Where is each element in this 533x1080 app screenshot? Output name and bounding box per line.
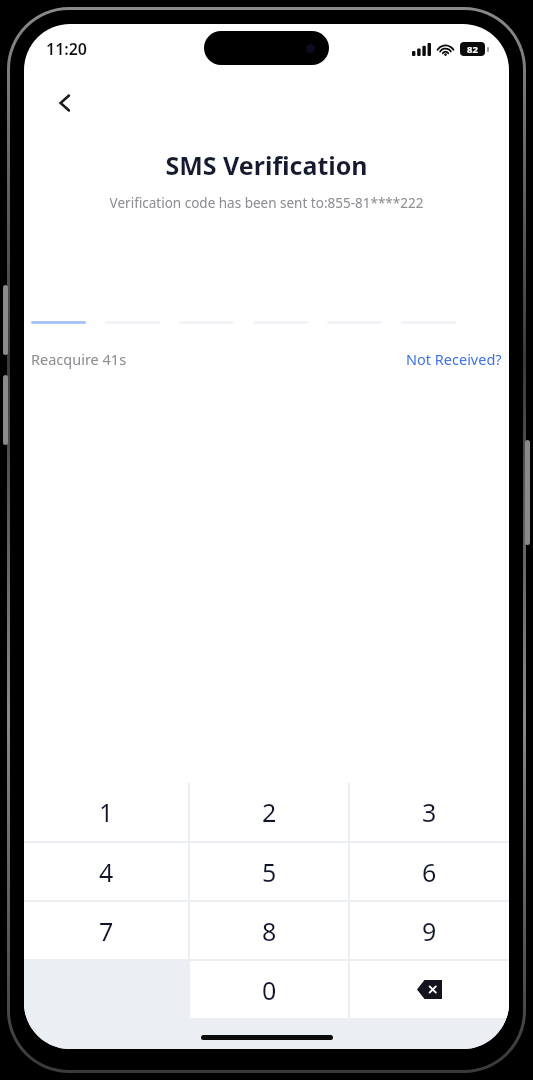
staticText: 2 [262,795,277,829]
button[interactable]: 3 [350,783,509,841]
staticText: 4 [99,855,114,889]
button[interactable] [179,300,234,324]
staticText: 0 [262,973,277,1007]
staticText: Verification code has been sent to:855-8… [32,194,501,212]
button[interactable] [253,300,308,324]
button[interactable]: 0 [190,961,348,1018]
button[interactable]: 5 [190,843,348,900]
staticText: 6 [422,855,437,889]
button[interactable] [401,300,456,324]
button[interactable]: 2 [190,783,348,841]
staticText: 1 [99,795,114,829]
staticText: Reacquire 41s [31,349,127,369]
button[interactable]: Not Received? [406,349,502,369]
staticText: 7 [99,914,114,948]
button[interactable]: Back [42,80,88,126]
button[interactable] [327,300,382,324]
button[interactable]: 1 [24,783,188,841]
button[interactable] [31,300,86,324]
staticText: SMS Verification [24,148,509,182]
staticText: 5 [262,855,277,889]
button[interactable] [105,300,160,324]
staticText: 3 [422,795,437,829]
staticText: 82 [467,43,478,56]
staticText: 9 [422,914,437,948]
staticText: 11:20 [46,38,88,60]
button[interactable]: Backspace [350,961,509,1018]
button[interactable]: 9 [350,902,509,959]
button[interactable]: 6 [350,843,509,900]
button[interactable]: 7 [24,902,188,959]
button[interactable]: 4 [24,843,188,900]
staticText: Not Received? [406,349,502,369]
button[interactable]: 8 [190,902,348,959]
staticText: 8 [262,914,277,948]
